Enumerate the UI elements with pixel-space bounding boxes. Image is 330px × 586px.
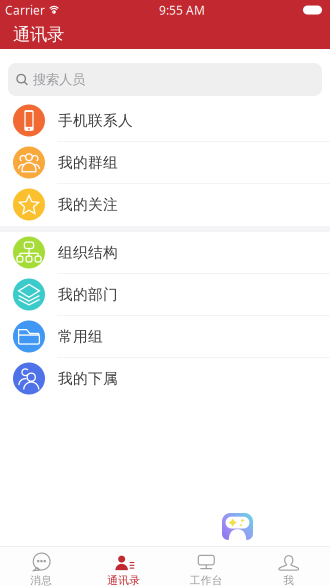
- button[interactable]: 工作台: [165, 546, 247, 586]
- staticText: 通讯录: [107, 574, 140, 586]
- staticText: 我的下属: [58, 369, 118, 387]
- staticText: 我的关注: [58, 195, 118, 213]
- staticText: 组织结构: [58, 243, 118, 261]
- staticText: 我的群组: [58, 153, 118, 171]
- staticText: 消息: [30, 574, 52, 586]
- staticText: Carrier: [5, 2, 45, 18]
- button[interactable]: 我的下属: [0, 358, 330, 400]
- button[interactable]: 我的部门: [0, 274, 330, 316]
- button[interactable]: 消息: [0, 546, 82, 586]
- staticText: 搜索人员: [33, 71, 85, 88]
- staticText: 我的部门: [58, 285, 118, 303]
- staticText: 手机联系人: [58, 111, 133, 129]
- button[interactable]: 通讯录: [82, 546, 165, 586]
- staticText: 常用组: [58, 327, 103, 345]
- staticText: 通讯录: [13, 24, 64, 45]
- button[interactable]: 游戏: [222, 513, 253, 540]
- button[interactable]: 我的群组: [0, 142, 330, 184]
- button[interactable]: 我的关注: [0, 184, 330, 226]
- staticText: 我: [283, 574, 294, 586]
- button[interactable]: 常用组: [0, 316, 330, 358]
- staticText: 9:55 AM: [159, 2, 205, 18]
- button[interactable]: 我: [247, 546, 330, 586]
- button[interactable]: 手机联系人: [0, 100, 330, 142]
- button[interactable]: 组织结构: [0, 232, 330, 274]
- staticText: 工作台: [190, 574, 223, 586]
